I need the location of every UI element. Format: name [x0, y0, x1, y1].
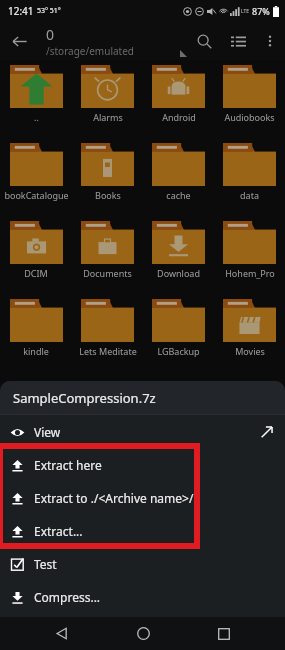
button[interactable]: Android — [143, 65, 214, 143]
button[interactable]: Books — [72, 143, 143, 221]
staticText: Alarms — [93, 111, 123, 123]
staticText: DCIM — [24, 267, 48, 279]
button[interactable]: Lets Meditate — [72, 299, 143, 377]
staticText: bookCatalogue — [4, 189, 69, 201]
button[interactable]: kindle — [0, 299, 72, 377]
button[interactable]: Recents — [204, 617, 244, 650]
staticText: Test — [34, 556, 57, 572]
button[interactable]: Compress... — [0, 580, 285, 613]
staticText: Download — [157, 267, 200, 279]
staticText: Extract here — [34, 457, 102, 473]
staticText: Hohem_Pro — [225, 267, 275, 279]
button[interactable]: Back — [41, 617, 81, 650]
button[interactable]: Audiobooks — [214, 65, 285, 143]
staticText: Lets Meditate — [79, 345, 137, 357]
staticText: Android — [162, 111, 196, 123]
staticText: .. — [34, 111, 39, 123]
button[interactable]: Test — [0, 547, 285, 580]
staticText: Movies — [235, 345, 265, 357]
button[interactable]: Home — [123, 617, 163, 650]
button[interactable]: .. — [0, 65, 72, 143]
button[interactable]: View — [0, 415, 285, 448]
staticText: View — [34, 424, 61, 440]
button[interactable]: Movies — [214, 299, 285, 377]
staticText: cache — [166, 189, 191, 201]
staticText: Compress... — [34, 589, 101, 605]
staticText: Books — [95, 189, 121, 201]
button[interactable]: Hohem_Pro — [214, 221, 285, 299]
button[interactable]: Extract here — [0, 448, 285, 481]
staticText: Extract... — [34, 523, 83, 539]
staticText: LGBackup — [157, 345, 200, 357]
other: Open with — [249, 425, 285, 439]
button[interactable]: data — [214, 143, 285, 221]
button[interactable]: bookCatalogue — [0, 143, 72, 221]
button[interactable]: Extract to ./<Archive name>/ — [0, 481, 285, 514]
button[interactable]: Alarms — [72, 65, 143, 143]
staticText: SampleCompression.7z — [13, 389, 156, 407]
button[interactable]: cache — [143, 143, 214, 221]
staticText: 53° 51° — [37, 6, 61, 16]
staticText: kindle — [23, 345, 49, 357]
button[interactable]: LGBackup — [143, 299, 214, 377]
button[interactable]: Documents — [72, 221, 143, 299]
button[interactable]: Download — [143, 221, 214, 299]
button[interactable]: List view — [221, 24, 255, 58]
button[interactable]: Extract... — [0, 514, 285, 547]
staticText: LTE — [241, 8, 250, 15]
button[interactable]: DCIM — [0, 221, 72, 299]
staticText: 0 — [46, 25, 55, 44]
staticText: data — [240, 189, 259, 201]
button[interactable]: More options — [255, 26, 285, 56]
button[interactable]: Search — [187, 24, 221, 58]
button[interactable]: Back — [0, 22, 38, 60]
staticText: 12:41 — [8, 4, 34, 18]
staticText: Documents — [83, 267, 132, 279]
staticText: Extract to ./<Archive name>/ — [34, 490, 194, 506]
staticText: Audiobooks — [224, 111, 275, 123]
staticText: 87% — [252, 5, 270, 17]
staticText: /storage/emulated — [46, 44, 134, 58]
